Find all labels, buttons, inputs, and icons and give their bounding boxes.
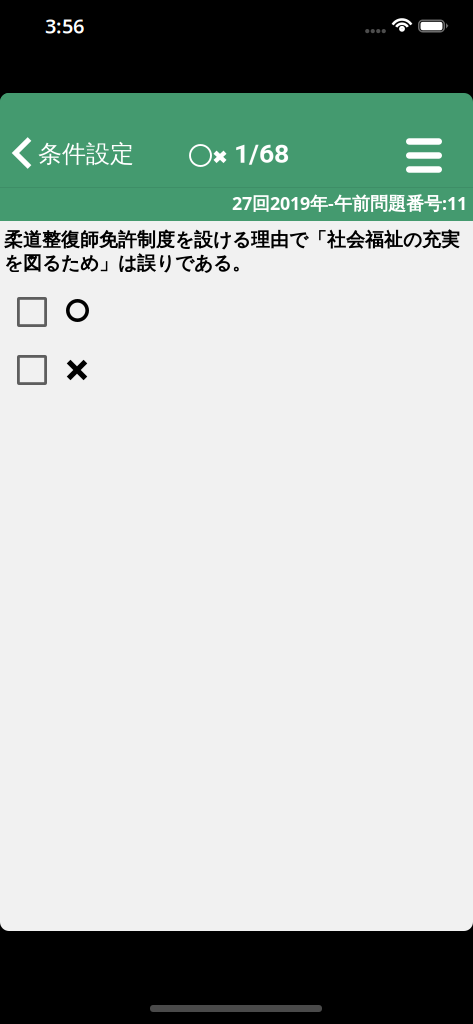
button[interactable] — [0, 348, 473, 392]
staticText: 3:56 — [45, 12, 84, 39]
button[interactable] — [0, 290, 473, 334]
staticText: 柔道整復師免許制度を設ける理由で「社会福祉の充実を図るため」は誤りである。 — [4, 228, 460, 275]
button[interactable]: 条件設定 — [0, 93, 146, 191]
staticText: 条件設定 — [38, 139, 134, 169]
staticText: 1/68 — [234, 138, 289, 169]
staticText: 27回2019年-午前問題番号:11 — [232, 191, 467, 215]
button[interactable]: Menu — [388, 93, 460, 191]
